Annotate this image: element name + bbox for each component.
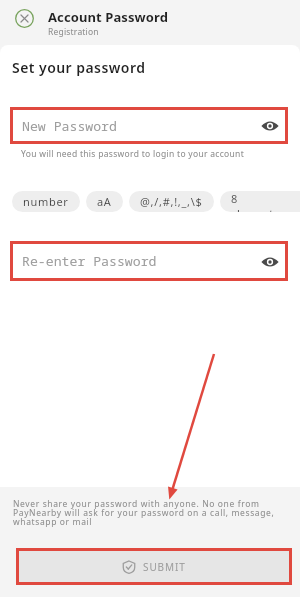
staticText: New Password [22, 117, 117, 135]
staticText: Account Password [48, 8, 168, 26]
button[interactable]: New Password [13, 110, 285, 141]
staticText: Set your password [12, 58, 146, 77]
button[interactable]: @,/,#,!,_,\$ [129, 191, 214, 212]
staticText: You will need this password to login to … [21, 148, 245, 160]
button[interactable]: 8 characters [220, 191, 300, 212]
button[interactable]: SUBMIT [19, 551, 289, 582]
button[interactable]: aA [86, 191, 123, 212]
staticText: 8 characters [231, 191, 300, 212]
staticText: number [23, 194, 69, 209]
button[interactable]: Show password [260, 252, 279, 271]
staticText: aA [97, 194, 112, 209]
staticText: SUBMIT [143, 560, 186, 574]
button[interactable]: Close [13, 7, 36, 30]
staticText: Re-enter Password [22, 252, 157, 270]
staticText: Never share your password with anyone. N… [13, 498, 285, 528]
button[interactable]: Re-enter Password [13, 244, 285, 278]
button[interactable]: Show password [260, 116, 279, 135]
button[interactable]: number [12, 191, 80, 212]
staticText: @,/,#,!,_,\$ [140, 194, 203, 209]
staticText: Registration [48, 26, 99, 38]
